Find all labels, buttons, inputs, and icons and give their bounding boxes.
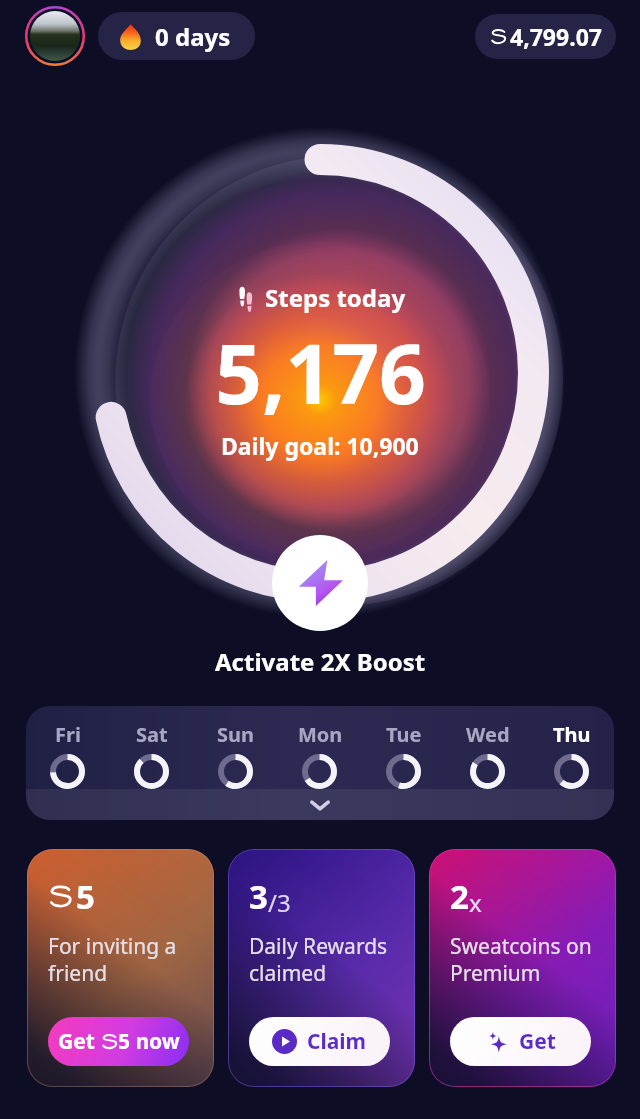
- staticText: 5 now: [118, 1027, 180, 1056]
- button[interactable]: Get: [48, 1017, 189, 1066]
- staticText: 5: [76, 874, 95, 919]
- staticText: Activate 2X Boost: [215, 645, 426, 678]
- staticText: /3: [268, 886, 291, 919]
- button[interactable]: Activate 2X Boost: [272, 535, 368, 631]
- staticText: Daily goal: 10,900: [221, 430, 419, 461]
- other: Show more: [308, 793, 332, 817]
- staticText: Sat: [136, 721, 168, 748]
- staticText: Get: [519, 1027, 556, 1056]
- staticText: 0 days: [155, 20, 231, 53]
- staticText: Sun: [217, 721, 255, 748]
- staticText: 4,799.07: [510, 21, 602, 52]
- staticText: Claim: [307, 1027, 367, 1056]
- staticText: Get: [58, 1027, 101, 1056]
- staticText: 2: [450, 874, 469, 919]
- staticText: Mon: [298, 721, 343, 748]
- button[interactable]: 2: [429, 849, 616, 1087]
- button[interactable]: 4,799.07: [475, 14, 616, 59]
- staticText: Sweatcoins on Premium: [450, 932, 592, 987]
- staticText: Tue: [386, 721, 422, 748]
- staticText: For inviting a friend: [48, 932, 177, 987]
- button[interactable]: 0 days: [98, 12, 255, 60]
- button[interactable]: Fri: [26, 706, 614, 820]
- button[interactable]: 3: [228, 849, 415, 1087]
- staticText: Steps today: [265, 281, 406, 314]
- staticText: 5,176: [215, 316, 426, 428]
- button[interactable]: 5: [27, 849, 214, 1087]
- button[interactable]: Claim: [249, 1017, 390, 1066]
- button[interactable]: Get: [450, 1017, 591, 1066]
- staticText: Daily Rewards claimed: [249, 932, 388, 987]
- staticText: Fri: [55, 721, 81, 748]
- staticText: Thu: [553, 721, 591, 748]
- button[interactable]: Profile: [25, 6, 85, 66]
- staticText: 3: [249, 874, 268, 919]
- staticText: x: [469, 886, 482, 919]
- staticText: Wed: [466, 721, 510, 748]
